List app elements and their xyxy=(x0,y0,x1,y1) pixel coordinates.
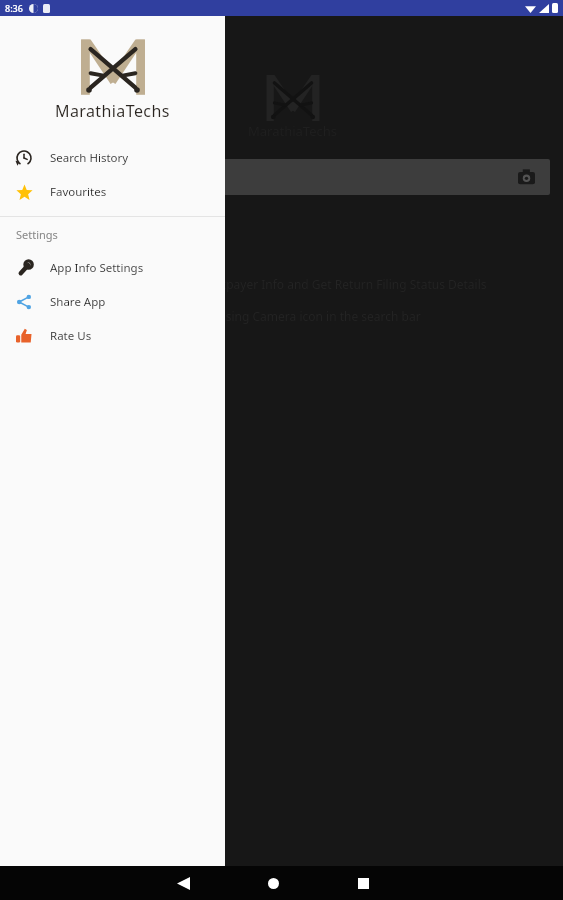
button[interactable]: Back xyxy=(160,866,206,900)
staticText: You can also scan GSTIN number using Cam… xyxy=(30,308,421,324)
staticText: Favourites xyxy=(50,184,107,200)
button[interactable]: Home xyxy=(250,866,296,900)
button[interactable]: Share App xyxy=(0,285,225,319)
staticText: Share App xyxy=(50,294,106,310)
staticText: 8:36 xyxy=(5,2,23,14)
staticText: MarathiaTechs xyxy=(55,100,170,122)
button[interactable]: App Info Settings xyxy=(0,251,225,285)
staticText: Search History xyxy=(50,150,129,166)
button[interactable]: Favourites xyxy=(0,175,225,209)
staticText: Settings xyxy=(16,227,58,242)
button[interactable]: Camera search xyxy=(514,165,538,189)
staticText: Enter GSTIN Number to Search Taxpayer In… xyxy=(30,276,487,292)
button[interactable]: Search History xyxy=(0,141,225,175)
staticText: App Info Settings xyxy=(50,260,144,276)
button[interactable]: Recent apps xyxy=(340,866,386,900)
staticText: Rate Us xyxy=(50,328,92,344)
button[interactable]: Rate Us xyxy=(0,319,225,353)
button[interactable]: Camera search xyxy=(14,159,550,195)
